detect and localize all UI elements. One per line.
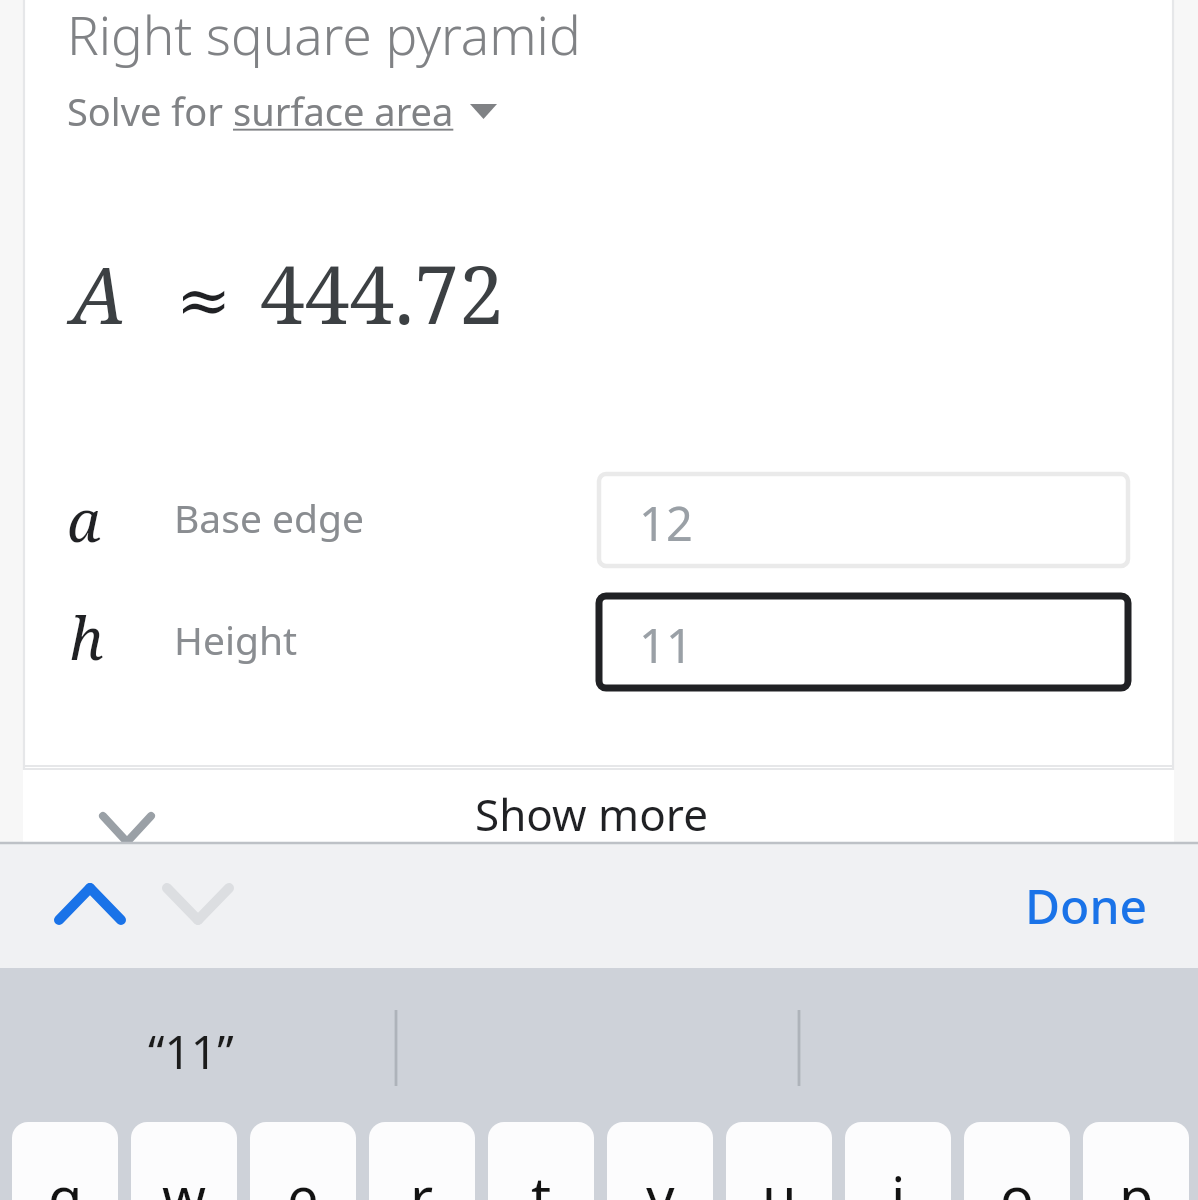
button[interactable]: “11” (148, 1020, 234, 1083)
staticText: A (71, 241, 126, 347)
staticText: surface area (233, 85, 454, 137)
button[interactable]: t (488, 1122, 594, 1200)
staticText: Base edge (174, 491, 365, 544)
button[interactable]: e (250, 1122, 356, 1200)
staticText: Right square pyramid (67, 0, 581, 70)
staticText: w (162, 1158, 207, 1200)
staticText: o (1000, 1158, 1034, 1200)
button[interactable]: u (726, 1122, 832, 1200)
button[interactable]: Show more (23, 770, 1174, 844)
button[interactable]: 11 (599, 596, 1128, 688)
staticText: y (646, 1158, 675, 1200)
button[interactable]: q (12, 1122, 118, 1200)
button[interactable]: o (964, 1122, 1070, 1200)
button[interactable]: Previous field (40, 868, 140, 940)
button[interactable]: p (1083, 1122, 1189, 1200)
staticText: r (410, 1158, 434, 1200)
button[interactable]: y (607, 1122, 713, 1200)
button[interactable]: Done (1008, 862, 1164, 948)
button[interactable]: 12 (599, 474, 1128, 566)
staticText: q (48, 1158, 83, 1200)
staticText: t (531, 1158, 552, 1200)
staticText: Show more (475, 784, 708, 844)
staticText: p (1119, 1158, 1154, 1200)
staticText: ≈ (176, 262, 232, 339)
staticText: i (891, 1158, 906, 1200)
staticText: e (287, 1158, 319, 1200)
staticText: Height (174, 613, 298, 666)
staticText: 444.72 (260, 238, 504, 347)
button[interactable]: w (131, 1122, 237, 1200)
button[interactable]: Solve for (67, 85, 497, 137)
staticText: h (69, 598, 104, 677)
staticText: 11 (639, 613, 693, 677)
button[interactable]: Next field (148, 868, 248, 940)
staticText: Solve for (67, 85, 233, 137)
staticText: a (67, 480, 101, 559)
button[interactable]: r (369, 1122, 475, 1200)
staticText: 12 (639, 491, 693, 555)
staticText: Done (1025, 873, 1148, 938)
button[interactable]: i (845, 1122, 951, 1200)
staticText: u (762, 1158, 797, 1200)
